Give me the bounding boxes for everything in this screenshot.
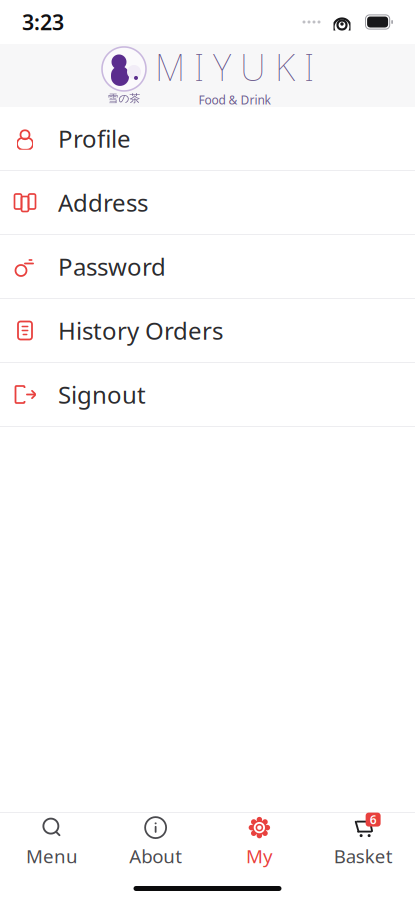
staticText: Password (58, 251, 166, 282)
button[interactable]: My (207, 809, 311, 872)
staticText: Menu (26, 844, 78, 868)
button[interactable]: Profile (0, 107, 415, 171)
staticText: 6 (370, 812, 377, 827)
staticText: My (246, 844, 273, 868)
staticText: About (129, 844, 182, 868)
button[interactable]: 6 (311, 809, 415, 872)
button[interactable]: Menu (0, 809, 104, 872)
button[interactable]: About (104, 809, 208, 872)
staticText: 3:23 (22, 8, 64, 36)
staticText: History Orders (58, 315, 223, 346)
button[interactable]: Signout (0, 363, 415, 427)
button[interactable]: Address (0, 171, 415, 235)
button[interactable]: History Orders (0, 299, 415, 363)
staticText: M I Y U K I (155, 43, 314, 91)
button[interactable]: Password (0, 235, 415, 299)
staticText: Address (58, 187, 148, 218)
staticText: Food & Drink (198, 92, 270, 108)
staticText: Signout (58, 379, 146, 410)
staticText: 雪の茶 (107, 92, 140, 105)
staticText: Profile (58, 123, 131, 154)
staticText: Basket (334, 844, 393, 868)
